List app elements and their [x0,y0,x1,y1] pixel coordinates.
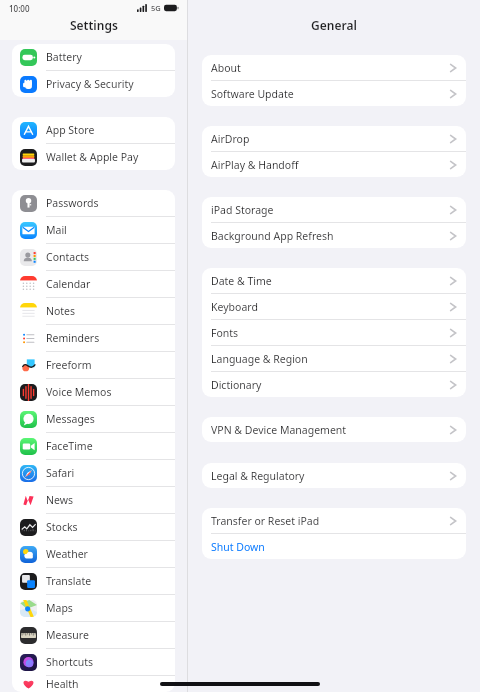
button[interactable]: Shut Down [202,534,466,559]
button[interactable]: AirPlay & Handoff [202,152,466,177]
staticText: Software Update [211,87,294,101]
button[interactable]: Battery [12,44,175,71]
staticText: Translate [46,574,92,588]
staticText: AirPlay & Handoff [211,158,299,172]
button[interactable]: Weather [12,541,175,568]
staticText: Language & Region [211,352,308,366]
staticText: Voice Memos [46,385,112,399]
button[interactable]: Voice Memos [12,379,175,406]
staticText: Battery [46,50,82,64]
button[interactable]: App Store [12,117,175,144]
button[interactable]: FaceTime [12,433,175,460]
staticText: Shut Down [211,540,265,554]
button[interactable]: Contacts [12,244,175,271]
staticText: News [46,493,73,507]
button[interactable]: News [12,487,175,514]
button[interactable]: About [202,55,466,81]
button[interactable]: Language & Region [202,346,466,372]
button[interactable]: Measure [12,622,175,649]
staticText: Maps [46,601,73,615]
staticText: General [311,17,357,33]
button[interactable]: Legal & Regulatory [202,463,466,488]
button[interactable]: Privacy & Security [12,71,175,97]
staticText: Contacts [46,250,90,264]
staticText: Weather [46,547,88,561]
button[interactable]: VPN & Device Management [202,417,466,442]
button[interactable]: Calendar [12,271,175,298]
button[interactable]: Dictionary [202,372,466,397]
staticText: Transfer or Reset iPad [211,514,320,528]
button[interactable]: iPad Storage [202,197,466,223]
button[interactable]: Notes [12,298,175,325]
button[interactable]: Mail [12,217,175,244]
staticText: Dictionary [211,378,262,392]
button[interactable]: Wallet & Apple Pay [12,144,175,170]
staticText: Background App Refresh [211,229,334,243]
button[interactable]: Freeform [12,352,175,379]
staticText: Safari [46,466,75,480]
button[interactable]: Safari [12,460,175,487]
button[interactable]: Stocks [12,514,175,541]
staticText: Messages [46,412,95,426]
staticText: Reminders [46,331,100,345]
staticText: App Store [46,123,95,137]
staticText: 5G [151,3,161,13]
button[interactable]: AirDrop [202,126,466,152]
staticText: Health [46,677,79,691]
staticText: Legal & Regulatory [211,469,305,483]
button[interactable]: Reminders [12,325,175,352]
staticText: Settings [70,17,118,33]
staticText: Fonts [211,326,239,340]
staticText: Notes [46,304,76,318]
staticText: iPad Storage [211,203,274,217]
staticText: Passwords [46,196,99,210]
button[interactable]: Maps [12,595,175,622]
staticText: Mail [46,223,67,237]
staticText: Shortcuts [46,655,94,669]
staticText: Wallet & Apple Pay [46,150,139,164]
staticText: Freeform [46,358,92,372]
button[interactable]: Messages [12,406,175,433]
button[interactable]: Shortcuts [12,649,175,676]
button[interactable]: Health [12,676,175,692]
staticText: Stocks [46,520,78,534]
staticText: FaceTime [46,439,93,453]
button[interactable]: Keyboard [202,294,466,320]
staticText: Calendar [46,277,91,291]
staticText: Date & Time [211,274,272,288]
staticText: Keyboard [211,300,258,314]
staticText: About [211,61,241,75]
button[interactable]: Software Update [202,81,466,106]
button[interactable]: Transfer or Reset iPad [202,508,466,534]
staticText: 10:00 [9,3,30,14]
staticText: VPN & Device Management [211,423,347,437]
staticText: Privacy & Security [46,77,134,91]
staticText: AirDrop [211,132,250,146]
button[interactable]: Background App Refresh [202,223,466,248]
button[interactable]: Date & Time [202,268,466,294]
button[interactable]: Passwords [12,190,175,217]
button[interactable]: Fonts [202,320,466,346]
staticText: Measure [46,628,89,642]
button[interactable]: Translate [12,568,175,595]
